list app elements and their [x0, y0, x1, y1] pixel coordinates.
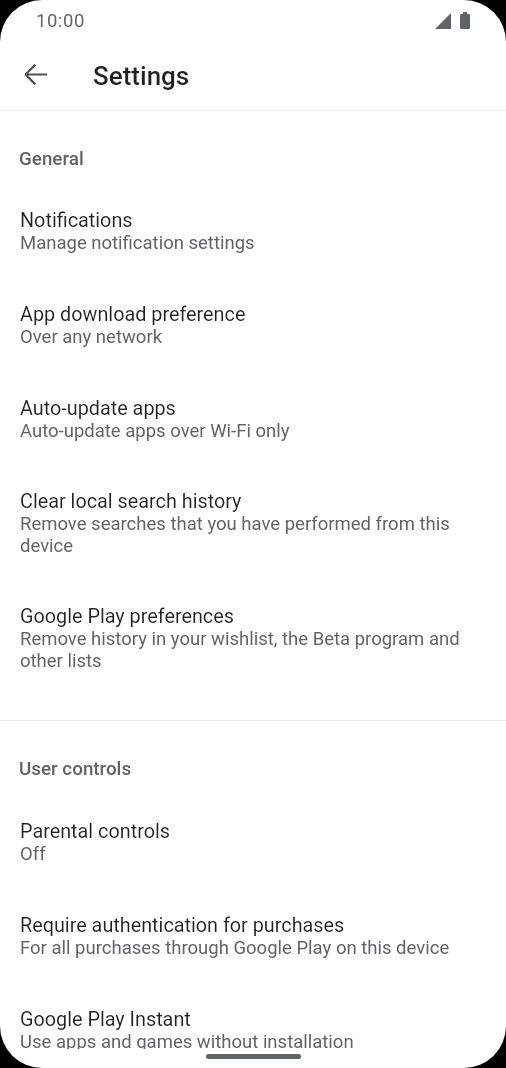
button[interactable]: Google Play Instant: [0, 985, 506, 1049]
staticText: Auto-update apps: [20, 395, 176, 420]
button[interactable]: Parental controls: [0, 797, 506, 891]
staticText: For all purchases through Google Play on…: [20, 937, 450, 959]
staticText: Google Play preferences: [20, 603, 234, 628]
staticText: Remove history in your wishlist, the Bet…: [20, 628, 460, 672]
button[interactable]: Navigate up: [13, 51, 59, 97]
staticText: Clear local search history: [20, 488, 242, 513]
staticText: Manage notification settings: [20, 232, 255, 254]
staticText: App download preference: [20, 301, 246, 326]
staticText: Parental controls: [20, 818, 170, 843]
staticText: Settings: [93, 61, 190, 91]
staticText: Use apps and games without installation: [20, 1031, 354, 1049]
staticText: Google Play Instant: [20, 1006, 191, 1031]
staticText: Notifications: [20, 207, 133, 232]
staticText: Remove searches that you have performed …: [20, 513, 460, 557]
staticText: 10:00: [36, 10, 86, 32]
button[interactable]: App download preference: [0, 280, 506, 374]
button[interactable]: Require authentication for purchases: [0, 891, 506, 985]
button[interactable]: Google Play preferences: [0, 582, 506, 697]
staticText: Require authentication for purchases: [20, 912, 345, 937]
button[interactable]: Clear local search history: [0, 467, 506, 582]
button[interactable]: Notifications: [0, 186, 506, 280]
staticText: Off: [20, 843, 46, 865]
staticText: Auto-update apps over Wi-Fi only: [20, 420, 290, 442]
staticText: Over any network: [20, 326, 163, 348]
staticText: General: [19, 148, 84, 170]
staticText: User controls: [19, 758, 132, 780]
button[interactable]: Auto-update apps: [0, 374, 506, 467]
